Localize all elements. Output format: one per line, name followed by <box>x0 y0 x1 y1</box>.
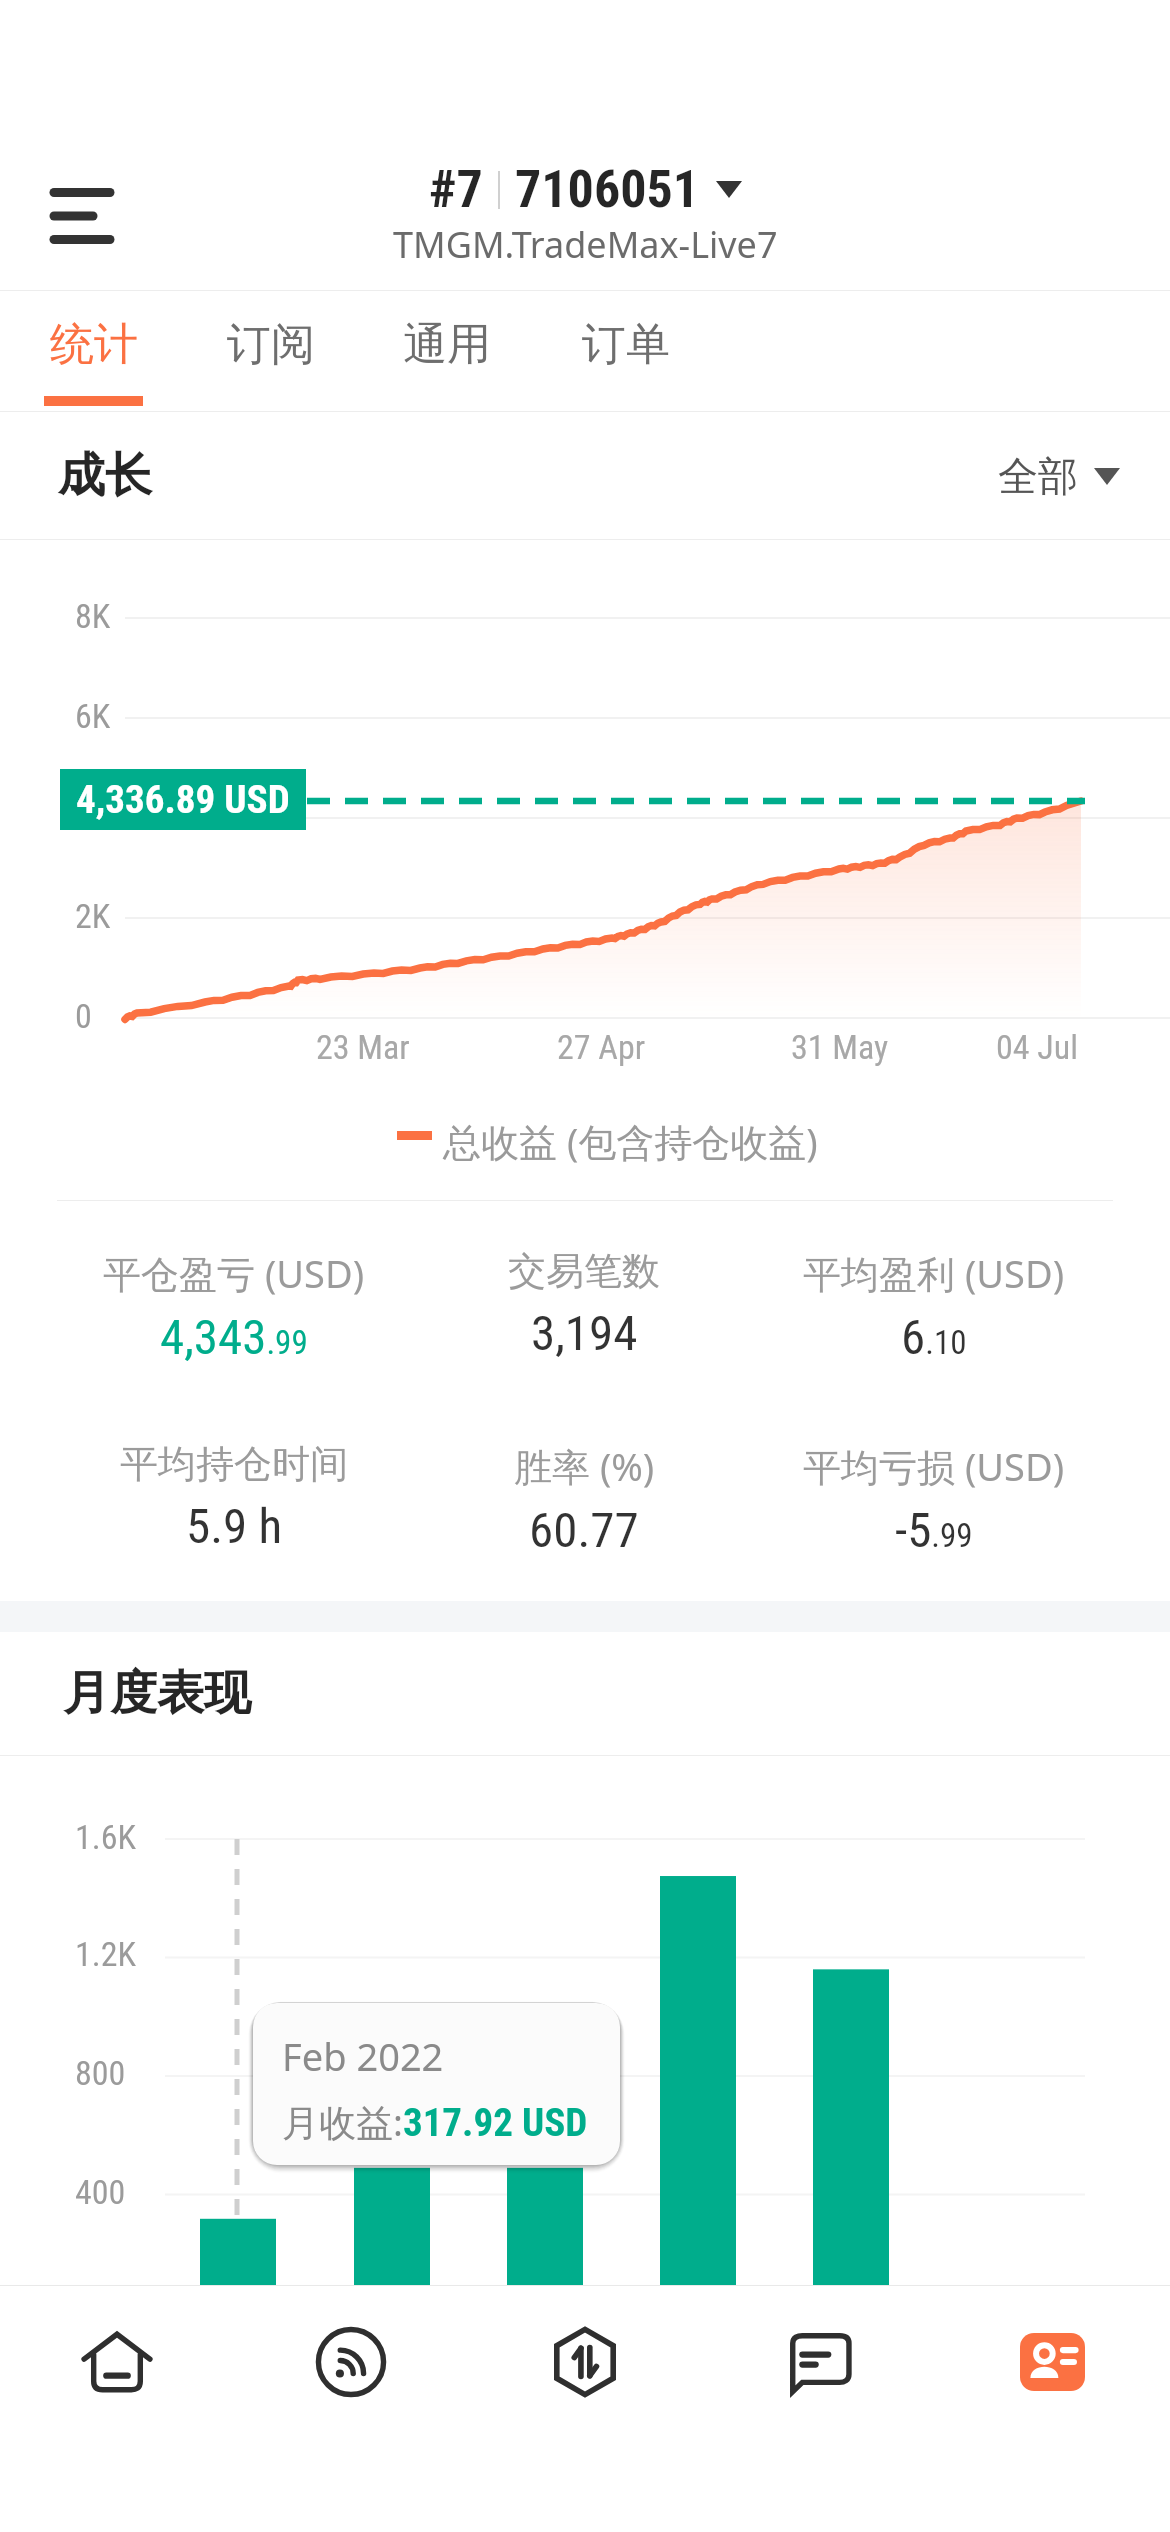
staticText: 31 May <box>791 1027 889 1067</box>
staticText: 800 <box>75 2053 126 2093</box>
staticText: #7 <box>429 159 483 220</box>
staticText: 5.9 h <box>186 1498 283 1555</box>
staticText: 胜率 (%) <box>514 1440 655 1492</box>
staticText: 6.10 <box>901 1309 967 1366</box>
button[interactable]: Signals <box>241 2286 461 2446</box>
button[interactable]: 通用 <box>369 291 525 411</box>
staticText: 7106051 <box>515 159 700 220</box>
staticText: 订单 <box>582 317 670 372</box>
staticText: TMGM.TradeMax-Live7 <box>393 220 778 269</box>
button[interactable]: Trade <box>475 2286 695 2446</box>
button[interactable]: 订单 <box>548 291 704 411</box>
staticText: 总收益 (包含持仓收益) <box>443 1115 818 1167</box>
staticText: 平仓盈亏 (USD) <box>103 1247 365 1299</box>
staticText: 4,336.89 USD <box>76 777 290 823</box>
staticText: 1.2K <box>75 1934 137 1974</box>
staticText: 3,194 <box>531 1305 638 1362</box>
staticText: 4,343.99 <box>160 1309 308 1366</box>
staticText: -5.99 <box>895 1502 973 1559</box>
button[interactable]: 统计 <box>15 291 171 411</box>
staticText: 04 Jul <box>996 1027 1079 1067</box>
staticText: 400 <box>75 2172 126 2212</box>
staticText: 27 Apr <box>557 1027 646 1067</box>
button[interactable]: Messages <box>709 2286 929 2446</box>
staticText: 6K <box>75 696 111 736</box>
staticText: 全部 <box>998 451 1078 501</box>
staticText: 月度表现 <box>63 1664 251 1723</box>
button[interactable]: 订阅 <box>193 291 349 411</box>
button[interactable]: Menu <box>30 165 132 267</box>
staticText: 平均亏损 (USD) <box>803 1440 1065 1492</box>
button[interactable]: Profile <box>943 2286 1163 2446</box>
staticText: 平均持仓时间 <box>120 1440 348 1488</box>
staticText: 成长 <box>58 446 152 505</box>
staticText: 月收益:317.92 USD <box>282 2096 588 2147</box>
staticText: 8K <box>75 596 111 636</box>
staticText: 通用 <box>403 317 491 372</box>
staticText: Feb 2022 <box>282 2030 444 2082</box>
staticText: 0 <box>75 996 92 1036</box>
staticText: 2K <box>75 896 111 936</box>
staticText: 统计 <box>50 317 138 372</box>
staticText: 订阅 <box>227 317 315 372</box>
staticText: 平均盈利 (USD) <box>803 1247 1065 1299</box>
button[interactable]: Home <box>7 2286 227 2446</box>
button[interactable]: 全部 <box>998 451 1120 501</box>
staticText: 60.77 <box>529 1502 639 1559</box>
staticText: 交易笔数 <box>508 1247 660 1295</box>
staticText: 1.6K <box>75 1817 137 1857</box>
staticText: 23 Mar <box>316 1027 410 1067</box>
